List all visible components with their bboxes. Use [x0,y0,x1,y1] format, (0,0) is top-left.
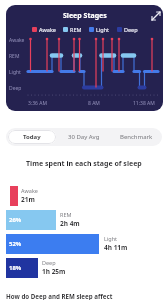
button[interactable]: Benchmark [110,128,162,146]
staticText: 4h 11m [104,243,128,252]
staticText: Light [96,26,110,33]
staticText: 2h 4m [60,219,80,228]
button[interactable] [148,8,163,24]
staticText: 3:36 AM [28,100,47,107]
staticText: Awake [21,187,38,194]
staticText: 1h 25m [42,267,66,276]
staticText: Light [9,69,21,76]
button[interactable]: 30 Day Avg [58,128,110,146]
staticText: 21m [21,195,35,204]
staticText: Deep [124,26,138,33]
staticText: Awake [39,26,56,33]
staticText: 11:38 AM [133,100,155,107]
staticText: 18% [9,264,22,272]
staticText: 30 Day Avg [68,133,100,141]
staticText: REM [9,53,20,60]
staticText: Light [104,235,118,242]
staticText: 26% [9,216,22,224]
staticText: REM [60,211,72,218]
staticText: Today [23,133,41,141]
staticText: Sleep Stages [63,11,107,21]
staticText: Awake [9,37,25,44]
staticText: Benchmark [120,133,153,141]
staticText: REM [70,26,82,33]
staticText: How do Deep and REM sleep affect [6,292,113,300]
staticText: 8 AM [88,100,100,107]
staticText: 52% [9,240,22,248]
button[interactable]: How do Deep and REM sleep affect [6,292,113,300]
staticText: Deep [9,85,22,92]
staticText: Deep [42,259,56,266]
staticText: Time spent in each stage of sleep [26,159,142,169]
button[interactable]: Today [8,130,56,144]
